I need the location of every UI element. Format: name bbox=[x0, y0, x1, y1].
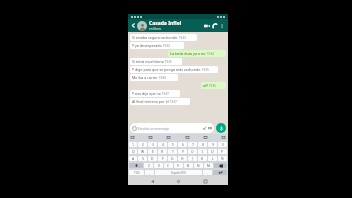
staticText: H bbox=[181, 156, 184, 161]
staticText: en línea bbox=[149, 27, 161, 31]
button[interactable]: uff bbox=[201, 82, 226, 89]
button[interactable]: Y yo desesperado bbox=[130, 42, 184, 49]
button[interactable]: . bbox=[203, 170, 212, 175]
button[interactable]: Q bbox=[129, 149, 137, 154]
button[interactable]: G bbox=[168, 156, 177, 161]
button[interactable]: A bbox=[129, 156, 137, 161]
other: Emoji bbox=[132, 126, 137, 131]
button[interactable]: Shift bbox=[129, 163, 143, 168]
staticText: uff bbox=[203, 83, 208, 88]
button[interactable]: B bbox=[184, 163, 193, 168]
staticText: F bbox=[162, 156, 164, 161]
button[interactable]: 6 bbox=[178, 142, 187, 147]
button[interactable]: 9 bbox=[208, 142, 217, 147]
button[interactable]: X bbox=[154, 163, 163, 168]
button[interactable]: Call bbox=[211, 22, 219, 30]
staticText: L bbox=[212, 156, 214, 161]
button[interactable]: Back bbox=[149, 178, 155, 184]
staticText: P bbox=[221, 149, 224, 154]
button[interactable]: Y bbox=[178, 149, 187, 154]
staticText: Z bbox=[148, 163, 150, 168]
staticText: K bbox=[201, 156, 204, 161]
button[interactable]: Backspace bbox=[214, 163, 227, 168]
staticText: 19:35 bbox=[165, 60, 172, 64]
button[interactable]: O bbox=[208, 149, 217, 154]
staticText: Español (ES) bbox=[171, 171, 186, 175]
button[interactable]: R bbox=[158, 149, 167, 154]
button[interactable]: 0 bbox=[218, 142, 227, 147]
staticText: 5 bbox=[172, 142, 174, 147]
button[interactable]: Keyboard tool 2 bbox=[148, 135, 153, 140]
button[interactable]: Si estaba segura cachondo bbox=[130, 34, 197, 41]
button[interactable]: Español (ES) bbox=[155, 170, 202, 175]
button[interactable]: La tenía dura ya o no bbox=[168, 50, 226, 57]
staticText: ?123 bbox=[134, 171, 140, 175]
other: Back bbox=[131, 23, 136, 28]
button[interactable]: C bbox=[164, 163, 173, 168]
staticText: 7 bbox=[192, 142, 194, 147]
staticText: C bbox=[167, 163, 170, 168]
button[interactable]: Keyboard tool 6 bbox=[221, 135, 226, 140]
button[interactable]: L bbox=[208, 156, 217, 161]
button[interactable]: Z bbox=[144, 163, 153, 168]
staticText: , bbox=[149, 170, 150, 175]
staticText: . bbox=[207, 170, 208, 175]
button[interactable]: 7 bbox=[188, 142, 197, 147]
staticText: D bbox=[151, 156, 154, 161]
button[interactable]: , bbox=[145, 170, 154, 175]
button[interactable]: Video call bbox=[203, 22, 211, 30]
staticText: Casada Infiel bbox=[149, 20, 182, 27]
button[interactable]: Keyboard tool 4 bbox=[185, 135, 190, 140]
button[interactable]: D bbox=[148, 156, 157, 161]
staticText: Si tenía muchísima bbox=[132, 59, 164, 64]
staticText: 3 bbox=[152, 142, 154, 147]
button[interactable]: Emoji bbox=[130, 123, 214, 133]
staticText: U bbox=[191, 149, 194, 154]
button[interactable]: S bbox=[138, 156, 147, 161]
button[interactable]: Enter bbox=[213, 170, 227, 175]
button[interactable]: Keyboard tool 5 bbox=[203, 135, 208, 140]
button[interactable]: V bbox=[174, 163, 183, 168]
staticText: 19:35 bbox=[202, 68, 209, 72]
button[interactable]: Home bbox=[175, 178, 181, 184]
staticText: Y bbox=[182, 149, 184, 154]
button[interactable]: Voice message bbox=[216, 123, 226, 133]
button[interactable]: P bbox=[218, 149, 227, 154]
staticText: R bbox=[161, 149, 164, 154]
button[interactable]: H bbox=[178, 156, 187, 161]
button[interactable]: Recents bbox=[202, 178, 208, 184]
staticText: Y nos dijo que no bbox=[132, 91, 161, 96]
button[interactable]: 4 bbox=[158, 142, 167, 147]
button[interactable]: 5 bbox=[168, 142, 177, 147]
button[interactable]: Me iba a correr bbox=[130, 74, 178, 81]
button[interactable]: More options bbox=[219, 23, 225, 29]
button[interactable]: W bbox=[138, 149, 147, 154]
button[interactable]: T bbox=[168, 149, 177, 154]
button[interactable]: M bbox=[204, 163, 213, 168]
button[interactable]: I bbox=[198, 149, 207, 154]
staticText: Y yo desesperado bbox=[132, 43, 162, 48]
button[interactable]: U bbox=[188, 149, 197, 154]
button[interactable]: Si tenía muchísima bbox=[130, 58, 182, 65]
button[interactable]: Back bbox=[128, 19, 228, 32]
button[interactable]: Y nos dijo que no bbox=[130, 90, 180, 97]
staticText: Me iba a correr bbox=[132, 75, 158, 80]
button[interactable]: Ñ bbox=[218, 156, 227, 161]
button[interactable]: 1 bbox=[129, 142, 137, 147]
button[interactable]: K bbox=[198, 156, 207, 161]
button[interactable]: Y digo para que se ponga más cachondo bbox=[130, 66, 218, 73]
button[interactable]: 3 bbox=[148, 142, 157, 147]
staticText: J bbox=[192, 156, 193, 161]
button[interactable]: 8 bbox=[198, 142, 207, 147]
button[interactable]: N bbox=[194, 163, 203, 168]
button[interactable]: E bbox=[148, 149, 157, 154]
button[interactable]: Keyboard tool 3 bbox=[166, 135, 171, 140]
button[interactable]: F bbox=[158, 156, 167, 161]
button[interactable]: Keyboard tool 1 bbox=[130, 135, 135, 140]
other: Camera bbox=[208, 126, 212, 130]
button[interactable]: Al final termino por él bbox=[130, 98, 190, 105]
button[interactable]: ?123 bbox=[129, 170, 144, 175]
other: Attach bbox=[203, 126, 207, 130]
button[interactable]: J bbox=[188, 156, 197, 161]
button[interactable]: 2 bbox=[138, 142, 147, 147]
